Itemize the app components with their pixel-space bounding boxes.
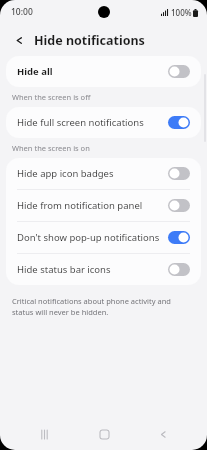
staticText: 10:00: [11, 6, 33, 18]
button[interactable]: Hide full screen notifications: [6, 107, 201, 138]
button[interactable]: Hide app icon badges: [6, 158, 201, 189]
staticText: Hide notifications: [34, 32, 145, 49]
staticText: Hide app icon badges: [17, 167, 162, 180]
staticText: 100%: [171, 7, 192, 18]
button[interactable]: Hide status bar icons: [6, 254, 201, 285]
staticText: Hide full screen notifications: [17, 116, 162, 129]
staticText: Critical notifications about phone activ…: [12, 296, 191, 317]
staticText: Hide from notification panel: [17, 199, 162, 212]
staticText: When the screen is off: [12, 92, 91, 102]
button[interactable]: Hide from notification panel: [6, 190, 201, 221]
button[interactable]: Hide all: [6, 56, 201, 87]
button[interactable]: Recent apps: [29, 419, 59, 449]
button[interactable]: Don't show pop-up notifications: [6, 222, 201, 253]
staticText: Hide status bar icons: [17, 263, 162, 276]
staticText: When the screen is on: [12, 143, 90, 153]
staticText: Hide all: [17, 65, 162, 78]
button[interactable]: Back: [148, 419, 178, 449]
button[interactable]: Back: [9, 30, 29, 50]
button[interactable]: Home: [89, 419, 119, 449]
staticText: Don't show pop-up notifications: [17, 231, 162, 244]
